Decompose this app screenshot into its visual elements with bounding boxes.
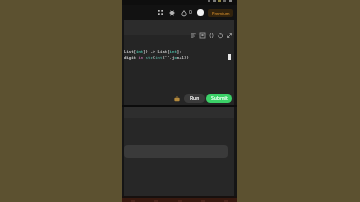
button[interactable]: Premium	[208, 9, 233, 17]
staticText: Run	[190, 95, 200, 102]
button[interactable]: Daily streak	[179, 8, 188, 17]
button[interactable]: Insert brackets	[207, 31, 216, 40]
button[interactable]: Undo	[216, 31, 225, 40]
button[interactable]: Format code	[189, 31, 198, 40]
button[interactable]: Full screen	[225, 31, 234, 40]
button[interactable]: Problem list	[156, 8, 165, 17]
button[interactable]: Bookmark	[198, 31, 207, 40]
staticText: digit in str(int(''.jon+1))	[124, 55, 189, 60]
button[interactable]: Run	[184, 94, 205, 103]
button[interactable]: AI assistant	[173, 95, 181, 103]
staticText: 0	[189, 9, 192, 16]
button[interactable]: Settings	[167, 8, 176, 17]
button[interactable]: Profile	[197, 9, 204, 16]
staticText: Premium	[212, 11, 230, 16]
button[interactable]: Submit	[206, 94, 232, 103]
button[interactable]: Navigation bar	[122, 198, 237, 202]
staticText: List[int]) -> List[int]:	[124, 49, 182, 54]
staticText: Submit	[211, 95, 228, 102]
